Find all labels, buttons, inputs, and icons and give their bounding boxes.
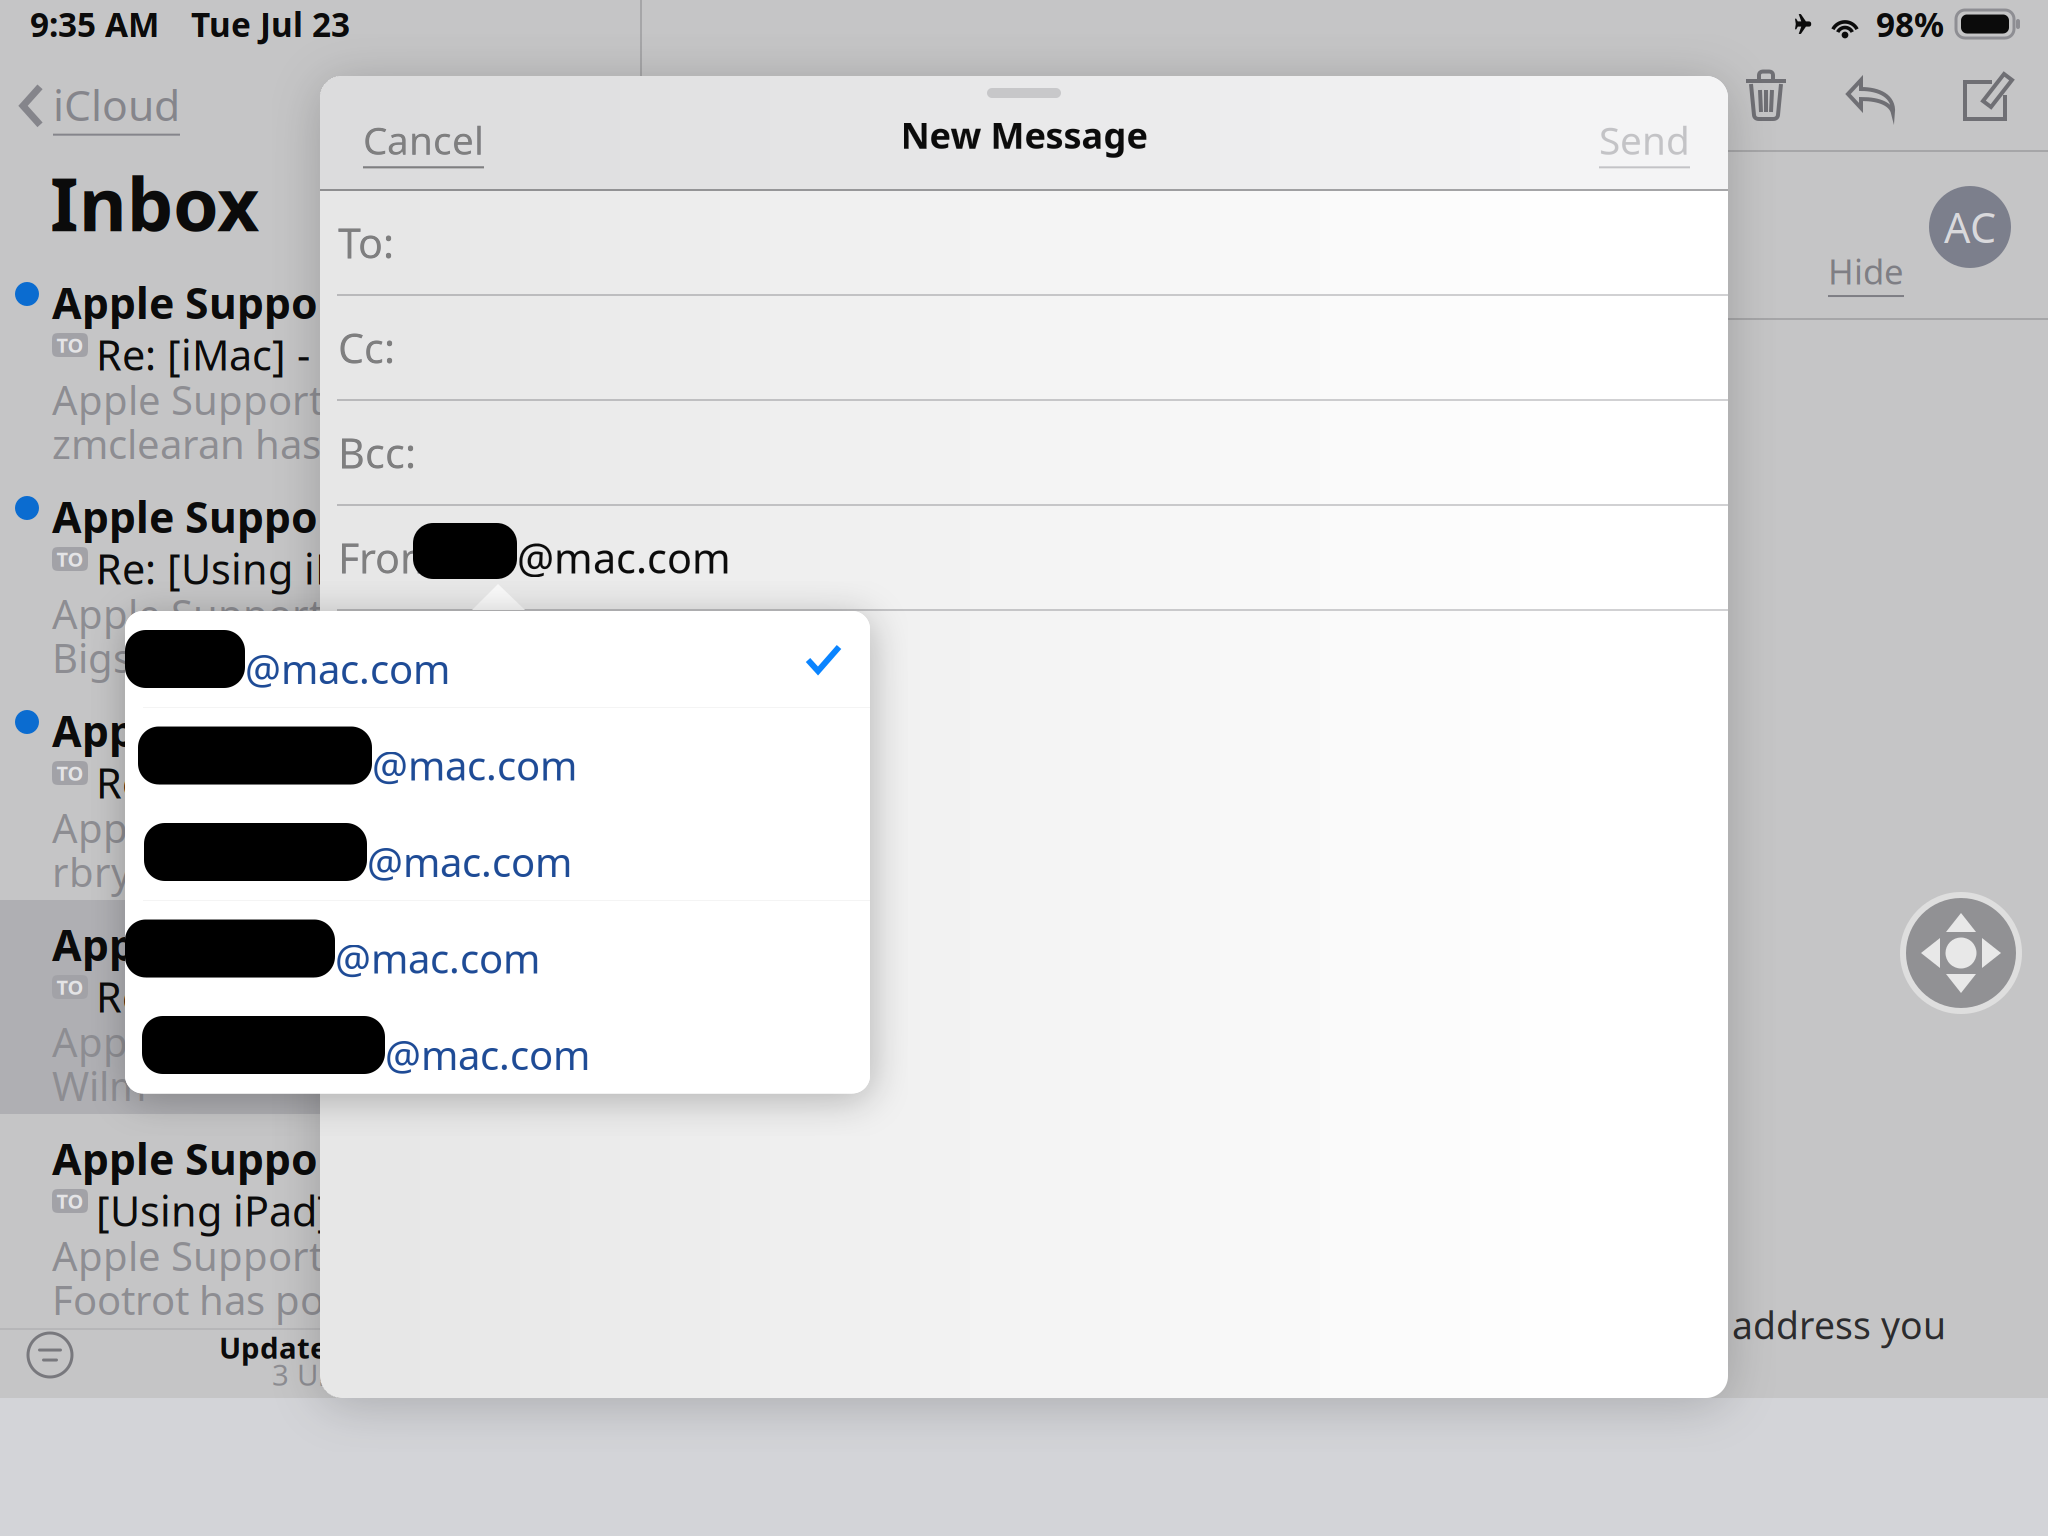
staticText: Apple — [52, 801, 161, 854]
button[interactable]: Apple Support Communities — [0, 472, 640, 686]
staticText: @mac.com — [385, 1028, 590, 1081]
button[interactable]: iCloud — [6, 68, 192, 144]
staticText: Updated — [219, 1328, 355, 1367]
staticText: TO — [56, 1188, 83, 1214]
staticText: @mac.com — [517, 530, 731, 585]
staticText: zmclearan has po — [52, 417, 380, 470]
staticText: TO — [56, 332, 83, 358]
staticText: Apple Support Co — [52, 587, 382, 640]
staticText: Apple Support Communities — [52, 488, 652, 545]
staticText: Wilm — [52, 1059, 146, 1112]
button[interactable]: @mac.com — [125, 997, 870, 1093]
button[interactable]: AssistiveTouch — [1898, 890, 2024, 1016]
staticText: 9:35 AM — [30, 2, 159, 46]
staticText: Inbox — [50, 154, 259, 251]
staticText: @mac.com — [372, 738, 577, 792]
staticText: New Message — [900, 111, 1147, 159]
staticText: Tue Jul 23 — [191, 2, 350, 46]
staticText: From: — [338, 530, 450, 585]
staticText: Apple Support Co — [52, 373, 382, 426]
staticText: Apple Support Communities — [52, 274, 652, 331]
staticText: rbry — [52, 845, 131, 898]
staticText: @mac.com — [335, 931, 540, 985]
staticText: Re: — [96, 755, 156, 810]
staticText: @mac.com — [367, 835, 572, 888]
staticText: address you — [1732, 1300, 1946, 1350]
button[interactable]: @mac.com — [125, 900, 870, 997]
staticText: TO — [56, 974, 83, 1000]
staticText: [Using iPad] - — [96, 1183, 366, 1238]
staticText: 98% — [1876, 2, 1944, 46]
button[interactable]: Delete — [1727, 50, 1805, 141]
staticText: Re: [Using iPad — [96, 541, 388, 596]
staticText: Re: — [96, 969, 156, 1024]
staticText: TO — [56, 760, 83, 786]
staticText: Bcc: — [338, 425, 416, 480]
staticText: Apple Support Communities — [52, 702, 652, 759]
staticText: Bigs — [52, 631, 132, 684]
staticText: AC — [1944, 200, 1996, 254]
button[interactable]: Hide — [1816, 236, 1916, 309]
staticText: Cancel — [363, 114, 484, 165]
staticText: Send — [1599, 114, 1690, 165]
button[interactable]: Compose — [1944, 53, 2033, 140]
staticText: @mac.com — [245, 642, 450, 695]
button[interactable]: Apple Support Communities — [0, 900, 640, 1114]
staticText: Apple Support Communities — [52, 1130, 652, 1187]
button[interactable]: Apple Support Communities — [0, 1114, 640, 1328]
button[interactable]: Cancel — [353, 104, 494, 178]
staticText: To: — [338, 215, 394, 270]
button[interactable]: @mac.com — [125, 804, 870, 900]
button[interactable]: Reply — [1827, 59, 1915, 134]
button[interactable]: @mac.com — [125, 707, 870, 804]
button[interactable]: @mac.com — [125, 611, 870, 707]
staticText: Appl — [52, 1015, 138, 1068]
button[interactable]: Apple Support Communities — [0, 686, 640, 900]
staticText: Apple Support Communities — [52, 916, 652, 973]
staticText: Footrot has poste — [52, 1273, 380, 1326]
staticText: Cc: — [338, 320, 395, 375]
staticText: TO — [56, 546, 83, 572]
staticText: 3 Un — [272, 1355, 336, 1394]
button[interactable]: Apple Support Communities — [0, 258, 640, 472]
staticText: iCloud — [53, 76, 180, 133]
staticText: Hide — [1828, 248, 1904, 294]
button[interactable]: Send — [1589, 104, 1700, 178]
staticText: Re: [iMac] - Br — [96, 327, 365, 382]
staticText: Apple Support Co — [52, 1229, 382, 1282]
button[interactable]: Filter — [12, 1317, 88, 1393]
